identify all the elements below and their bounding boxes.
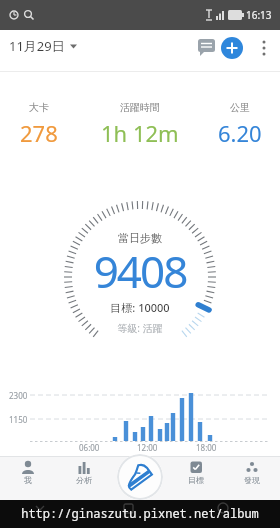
- button[interactable]: [221, 37, 243, 59]
- staticText: 6.20: [218, 118, 262, 148]
- staticText: http://ginaszutu.pixnet.net/album: [0, 505, 280, 521]
- staticText: 9408: [0, 241, 280, 301]
- button[interactable]: 活躍時間: [95, 101, 185, 148]
- button[interactable]: 發現: [228, 460, 276, 500]
- button[interactable]: 分析: [60, 460, 108, 500]
- staticText: 16:13: [246, 8, 272, 22]
- staticText: 278: [20, 118, 58, 148]
- button[interactable]: 目標: [172, 460, 220, 500]
- staticText: 1h 12m: [101, 118, 179, 148]
- staticText: 當日步數: [0, 231, 280, 245]
- button[interactable]: 我: [4, 460, 52, 500]
- staticText: 我: [24, 475, 32, 485]
- staticText: 活躍時間: [120, 101, 160, 114]
- button[interactable]: [117, 454, 163, 500]
- button[interactable]: [194, 34, 220, 60]
- staticText: 2300: [9, 390, 28, 401]
- staticText: 18:00: [196, 442, 217, 453]
- button[interactable]: [254, 34, 274, 62]
- staticText: 等級: 活躍: [0, 321, 280, 335]
- staticText: 分析: [76, 475, 92, 485]
- staticText: 11月29日: [9, 37, 65, 55]
- staticText: 12:00: [137, 442, 158, 453]
- staticText: 目標: 10000: [0, 300, 280, 315]
- button[interactable]: 11月29日: [9, 37, 78, 55]
- staticText: 目標: [188, 475, 204, 485]
- staticText: 06:00: [79, 442, 100, 453]
- staticText: 1150: [9, 414, 28, 425]
- staticText: 大卡: [29, 101, 49, 114]
- button[interactable]: 公里: [195, 101, 280, 148]
- staticText: 發現: [244, 475, 260, 485]
- staticText: 公里: [230, 101, 250, 114]
- button[interactable]: 大卡: [0, 101, 84, 148]
